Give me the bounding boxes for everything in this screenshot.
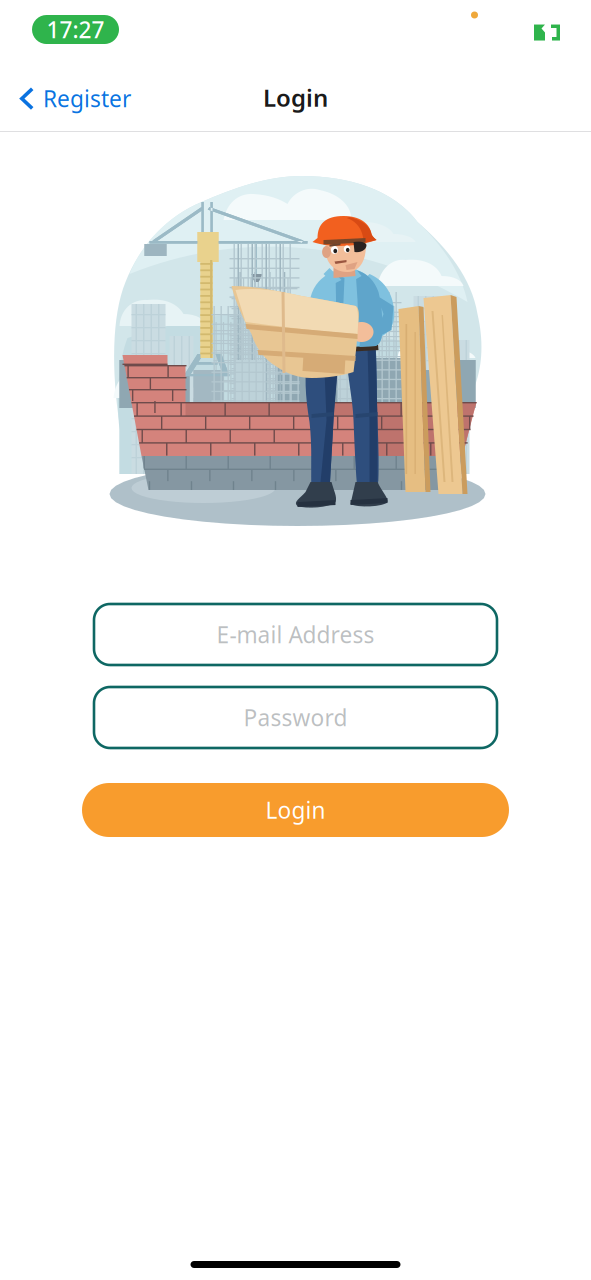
staticText: Password [243,702,347,732]
staticText: 17:27 [46,14,104,44]
staticText: Login [263,82,328,113]
button[interactable]: Login [82,783,509,837]
staticText: Login [265,795,325,825]
button[interactable]: Register [0,81,143,131]
staticText: Register [43,83,131,113]
staticText: E-mail Address [216,619,374,649]
